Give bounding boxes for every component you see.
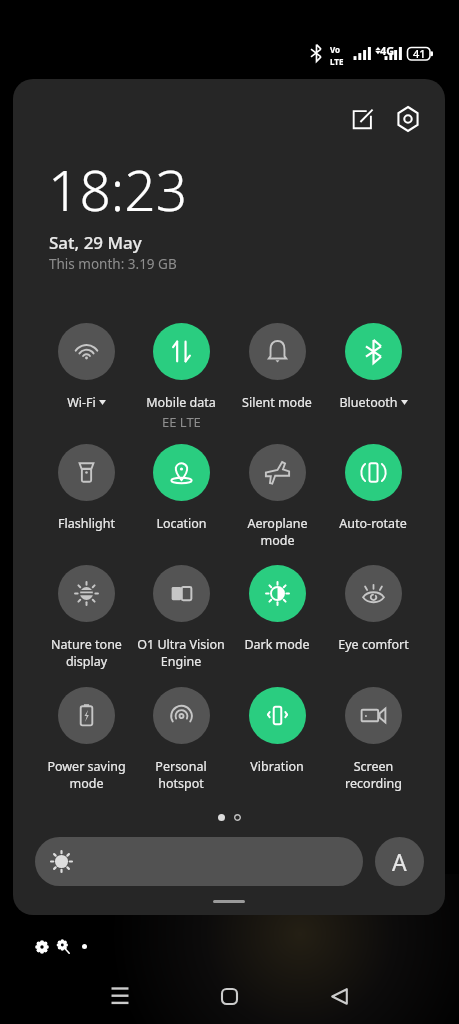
staticText: EE LTE [162,413,201,431]
button[interactable]: Bluetooth [325,323,421,411]
staticText: Sat, 29 May [49,231,142,254]
button[interactable]: O1 Ultra Vision Engine [133,565,229,669]
staticText: O1 Ultra Vision Engine [137,636,225,669]
button[interactable]: Auto brightness [375,837,424,886]
staticText: Mobile data [146,394,216,411]
staticText: 41 [413,46,426,61]
button[interactable]: Auto-rotate [325,444,421,532]
staticText: Vibration [250,758,304,775]
button[interactable]: Brightness [35,837,363,886]
staticText: Aeroplane mode [247,515,308,548]
button[interactable]: Wi-Fi [38,323,134,411]
staticText: This month: 3.19 GB [49,255,177,273]
staticText: Auto-rotate [339,515,407,532]
staticText: Location [156,515,207,532]
staticText: A [392,846,407,877]
button[interactable]: Home [201,968,257,1024]
button[interactable]: Flashlight [38,444,134,532]
button[interactable]: Dark mode [229,565,325,653]
staticText: Nature tone display [51,636,122,669]
staticText: Bluetooth [339,394,398,411]
button[interactable]: Aeroplane mode [229,444,325,548]
button[interactable]: Screen recording [325,687,421,791]
staticText: 4G [380,43,395,58]
staticText: Personal hotspot [155,758,207,791]
button[interactable]: Recents [92,968,148,1024]
button[interactable]: Edit [340,97,384,141]
staticText: Wi-Fi [67,394,96,411]
button[interactable]: Settings [386,97,430,141]
button[interactable]: Personal hotspot [133,687,229,791]
staticText: Vo [330,44,341,55]
staticText: Flashlight [58,515,115,532]
staticText: Power saving mode [47,758,126,791]
staticText: Dark mode [244,636,310,653]
staticText: Silent mode [242,394,312,411]
button[interactable]: Vibration [229,687,325,775]
button[interactable]: Back [311,968,367,1024]
button[interactable]: Power saving mode [38,687,134,791]
button[interactable]: Eye comfort [325,565,421,653]
staticText: 18:23 [48,152,188,227]
button[interactable]: Silent mode [229,323,325,411]
button[interactable]: Mobile data [133,323,229,431]
staticText: LTE [330,56,344,67]
staticText: Eye comfort [338,636,409,653]
staticText: Screen recording [345,758,402,791]
button[interactable]: Location [133,444,229,532]
button[interactable]: Nature tone display [38,565,134,669]
